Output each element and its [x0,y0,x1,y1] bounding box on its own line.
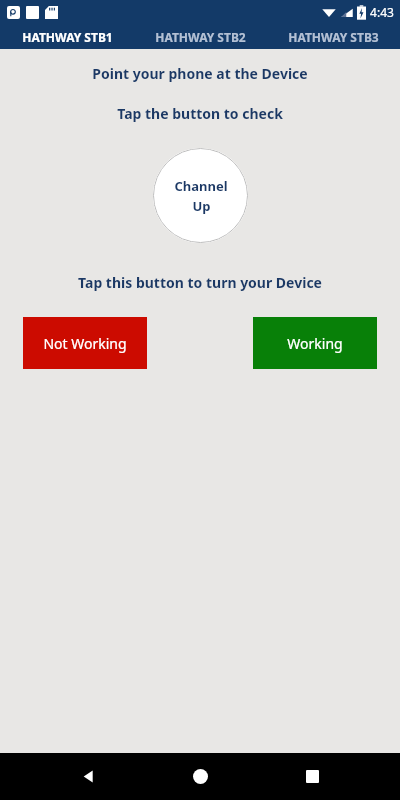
staticText: HATHWAY STB1 [22,29,113,45]
staticText: Not Working [43,334,127,353]
staticText: Up [192,197,211,215]
button[interactable]: Working [253,317,377,369]
button[interactable]: Not Working [23,317,147,369]
staticText: Working [287,334,343,353]
staticText: 4:43 [370,4,394,20]
staticText: Channel [174,177,228,195]
button[interactable]: Channel [153,148,248,243]
button[interactable]: HATHWAY STB2 [134,24,267,49]
button[interactable]: Back [64,753,112,800]
staticText: Point your phone at the Device [92,64,308,83]
button[interactable]: HATHWAY STB1 [0,24,134,49]
staticText: Tap this button to turn your Device [78,273,322,292]
staticText: HATHWAY STB3 [288,29,379,45]
staticText: HATHWAY STB2 [155,29,246,45]
button[interactable]: HATHWAY STB3 [267,24,400,49]
button[interactable]: Recent apps [288,753,336,800]
staticText: Tap the button to check [117,104,283,123]
button[interactable]: Home [176,753,224,800]
